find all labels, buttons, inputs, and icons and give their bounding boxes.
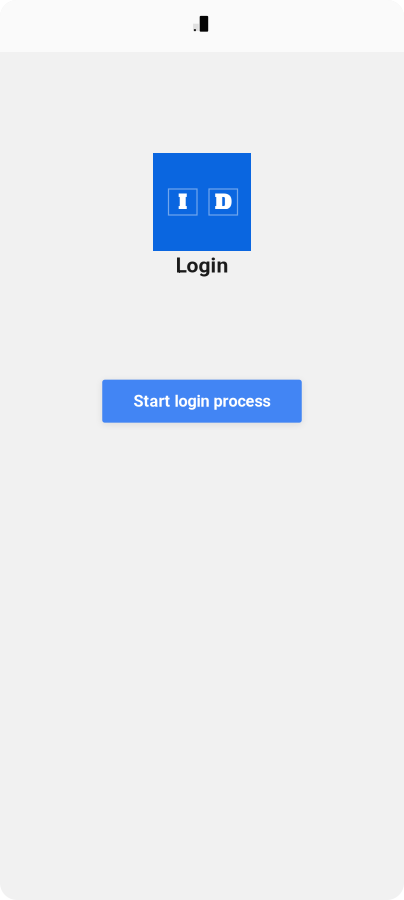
staticText: Start login process [133,392,270,411]
staticText: D [215,187,232,217]
staticText: Login [175,253,228,278]
staticText: I [178,187,187,217]
button[interactable]: Start login process [102,380,302,423]
